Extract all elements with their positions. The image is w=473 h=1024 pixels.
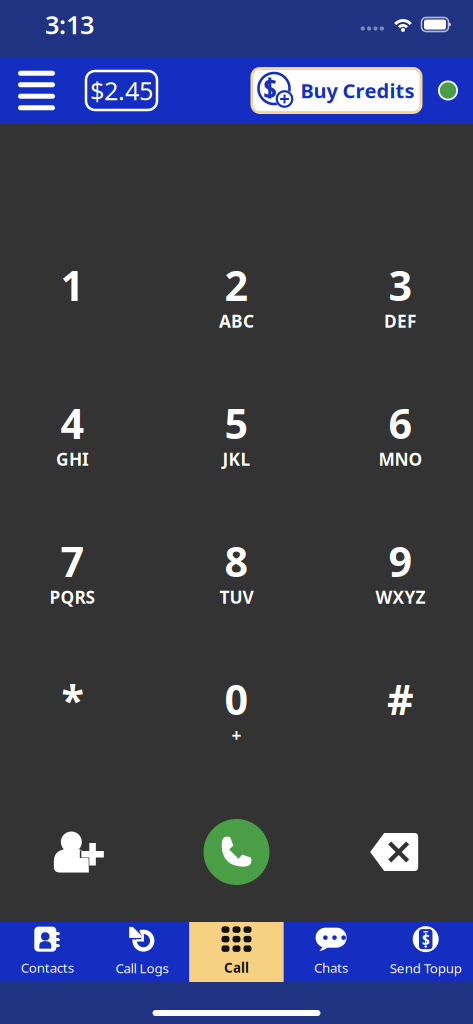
staticText: 7 — [60, 534, 84, 588]
button[interactable]: 7 — [32, 543, 112, 599]
button[interactable]: Call — [158, 817, 315, 887]
staticText: Buy Credits — [300, 77, 414, 104]
button[interactable]: Contacts — [0, 922, 95, 982]
button[interactable]: 6 — [360, 405, 440, 461]
staticText: 4 — [60, 396, 84, 450]
button[interactable]: * — [32, 681, 112, 737]
staticText: 9 — [388, 534, 412, 588]
button[interactable]: # — [360, 681, 440, 737]
staticText: MNO — [378, 447, 422, 470]
staticText: 8 — [224, 534, 248, 588]
button[interactable]: Call Logs — [95, 922, 189, 982]
staticText: ABC — [219, 309, 254, 332]
button[interactable]: $2.45 — [86, 71, 157, 110]
button[interactable]: 4 — [32, 405, 112, 461]
button[interactable]: Menu — [12, 62, 61, 118]
staticText: Call — [224, 959, 249, 976]
staticText: JKL — [222, 447, 250, 470]
button[interactable]: S — [252, 68, 421, 112]
staticText: 0 — [224, 672, 248, 726]
staticText: PQRS — [49, 585, 95, 608]
staticText: $2.45 — [90, 74, 153, 107]
staticText: DEF — [384, 309, 417, 332]
button[interactable]: 0 — [196, 681, 276, 737]
staticText: + — [231, 723, 241, 746]
staticText: 3:13 — [45, 8, 94, 41]
button[interactable]: 5 — [196, 405, 276, 461]
staticText: # — [387, 672, 414, 726]
button[interactable]: S — [378, 922, 473, 982]
button[interactable]: 2 — [196, 267, 276, 323]
staticText: Contacts — [21, 959, 74, 976]
staticText: 3 — [388, 258, 412, 312]
staticText: 1 — [60, 258, 84, 312]
staticText: TUV — [219, 585, 253, 608]
button[interactable]: Status — [436, 70, 460, 110]
button[interactable]: 8 — [196, 543, 276, 599]
staticText: Chats — [314, 959, 348, 976]
button[interactable]: 1 — [32, 267, 112, 323]
staticText: 2 — [224, 258, 248, 312]
staticText: Send Topup — [390, 959, 462, 977]
button[interactable]: Delete — [315, 817, 473, 887]
button[interactable]: 9 — [360, 543, 440, 599]
staticText: GHI — [56, 447, 89, 470]
staticText: Call Logs — [115, 959, 168, 977]
button[interactable]: Call — [189, 922, 284, 982]
button[interactable]: Add Contact — [0, 817, 158, 887]
staticText: WXYZ — [375, 585, 425, 608]
staticText: * — [61, 672, 83, 726]
staticText: 5 — [224, 396, 248, 450]
staticText: S — [422, 929, 430, 949]
staticText: 6 — [388, 396, 412, 450]
button[interactable]: Chats — [284, 922, 378, 982]
staticText: S — [263, 71, 277, 105]
button[interactable]: 3 — [360, 267, 440, 323]
